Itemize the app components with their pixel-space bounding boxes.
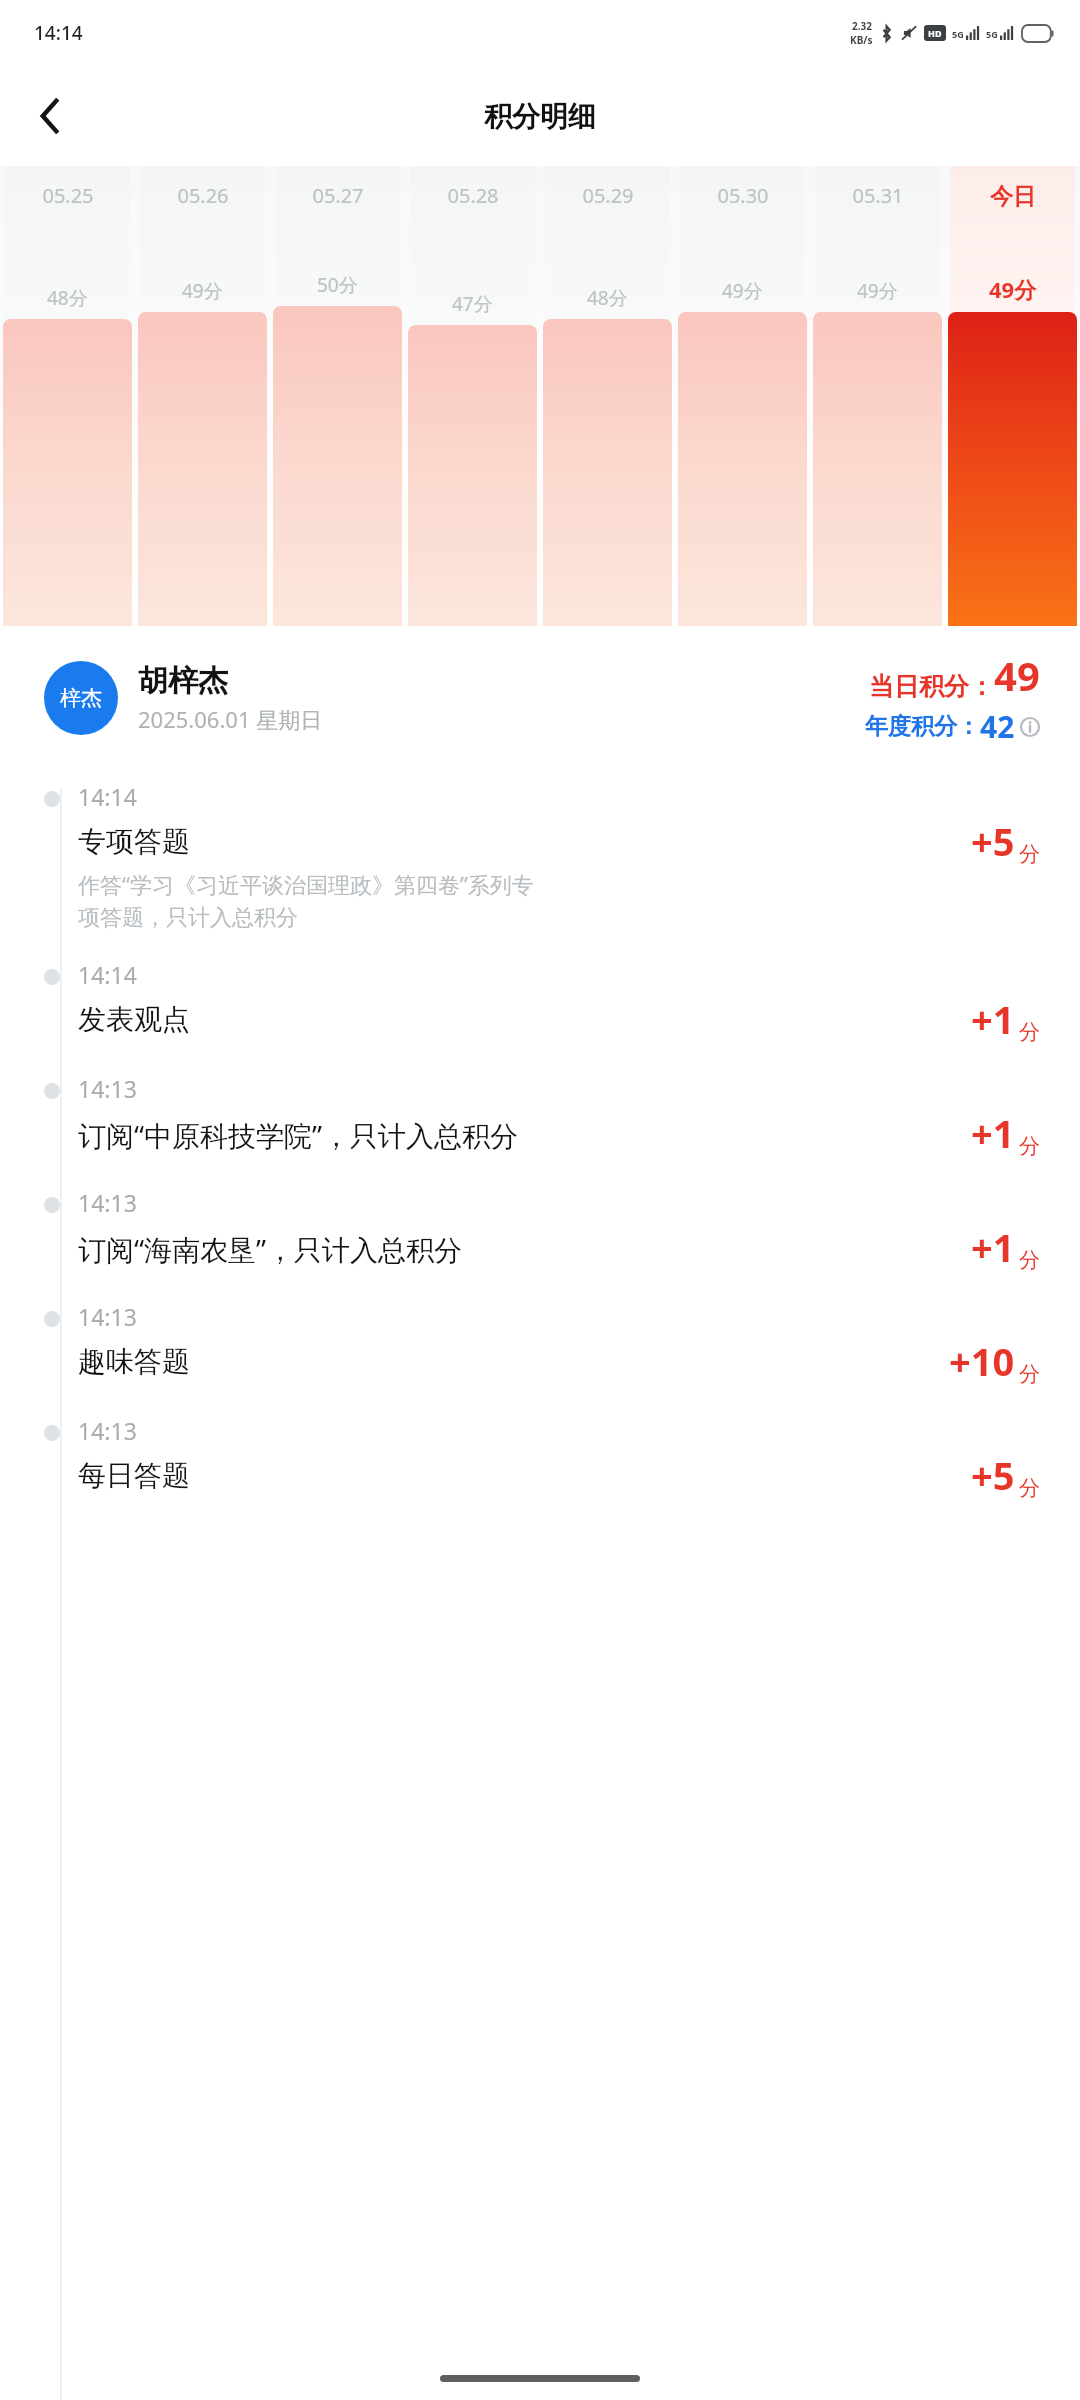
button[interactable]: 05.28 <box>408 166 537 626</box>
staticText: 05.26 <box>177 182 229 209</box>
staticText: 5G <box>952 28 964 40</box>
staticText: 42 <box>980 706 1015 747</box>
staticText: 每日答题 <box>78 1458 190 1493</box>
staticText: HD <box>928 27 942 39</box>
button[interactable]: 05.27 <box>273 166 402 626</box>
staticText: 49分 <box>857 278 898 304</box>
staticText: 专项答题 <box>78 824 190 859</box>
button[interactable]: 14:14 <box>0 943 1080 1057</box>
staticText: +1 <box>971 993 1015 1045</box>
staticText: 50分 <box>317 272 358 298</box>
staticText: 48分 <box>47 285 88 311</box>
button[interactable]: 05.26 <box>138 166 267 626</box>
staticText: 05.29 <box>582 182 634 209</box>
staticText: 5G <box>986 28 998 40</box>
staticText: 作答“学习《习近平谈治国理政》第四卷”系列专 项答题，只计入总积分 <box>78 869 534 931</box>
button[interactable]: 返回 <box>18 84 82 148</box>
staticText: 14:13 <box>78 1073 137 1104</box>
staticText: 订阅“海南农垦”，只计入总积分 <box>78 1230 463 1268</box>
staticText: 分 <box>1019 1133 1040 1159</box>
button[interactable]: 14:13 <box>0 1057 1080 1171</box>
button[interactable]: 05.30 <box>678 166 807 626</box>
staticText: KB/s <box>850 33 873 47</box>
staticText: 14:14 <box>34 20 83 46</box>
button[interactable]: 14:14 <box>0 765 1080 943</box>
staticText: 分 <box>1019 1019 1040 1045</box>
staticText: 14:13 <box>78 1415 137 1446</box>
staticText: 年度积分： <box>865 712 980 741</box>
staticText: 分 <box>1019 1361 1040 1387</box>
button[interactable]: 05.29 <box>543 166 672 626</box>
staticText: 2025.06.01 星期日 <box>138 704 323 734</box>
staticText: 05.27 <box>312 182 364 209</box>
staticText: 05.25 <box>42 182 94 209</box>
staticText: +10 <box>949 1335 1015 1387</box>
staticText: 05.28 <box>447 182 499 209</box>
staticText: 14:13 <box>78 1301 137 1332</box>
staticText: 分 <box>1019 1475 1040 1501</box>
staticText: 49分 <box>182 278 223 304</box>
staticText: 14:14 <box>78 781 137 812</box>
button[interactable]: 梓杰 <box>44 648 1040 747</box>
staticText: 胡梓杰 <box>138 662 228 700</box>
staticText: +1 <box>971 1221 1015 1273</box>
button[interactable]: 今日 <box>948 166 1077 626</box>
staticText: 05.30 <box>717 182 769 209</box>
staticText: 积分明细 <box>484 99 596 134</box>
button[interactable]: 14:13 <box>0 1399 1080 1513</box>
staticText: 49分 <box>722 278 763 304</box>
staticText: 2.32 <box>852 19 872 33</box>
staticText: +5 <box>971 1449 1015 1501</box>
button[interactable]: 05.25 <box>3 166 132 626</box>
staticText: 14:13 <box>78 1187 137 1218</box>
staticText: 49 <box>994 648 1040 702</box>
button[interactable]: 14:13 <box>0 1171 1080 1285</box>
staticText: +1 <box>971 1107 1015 1159</box>
staticText: 48分 <box>587 285 628 311</box>
staticText: 订阅“中原科技学院”，只计入总积分 <box>78 1116 519 1154</box>
staticText: 今日 <box>990 182 1036 211</box>
button[interactable]: 05.31 <box>813 166 942 626</box>
staticText: +5 <box>971 815 1015 867</box>
staticText: 47分 <box>452 291 493 317</box>
staticText: 分 <box>1019 841 1040 867</box>
staticText: 05.31 <box>852 182 904 209</box>
staticText: 趣味答题 <box>78 1344 190 1379</box>
staticText: 分 <box>1019 1247 1040 1273</box>
staticText: 49分 <box>989 274 1037 304</box>
staticText: 当日积分： <box>869 671 994 702</box>
button[interactable]: 14:13 <box>0 1285 1080 1399</box>
staticText: 14:14 <box>78 959 137 990</box>
staticText: 梓杰 <box>60 685 102 711</box>
staticText: 发表观点 <box>78 1002 190 1037</box>
